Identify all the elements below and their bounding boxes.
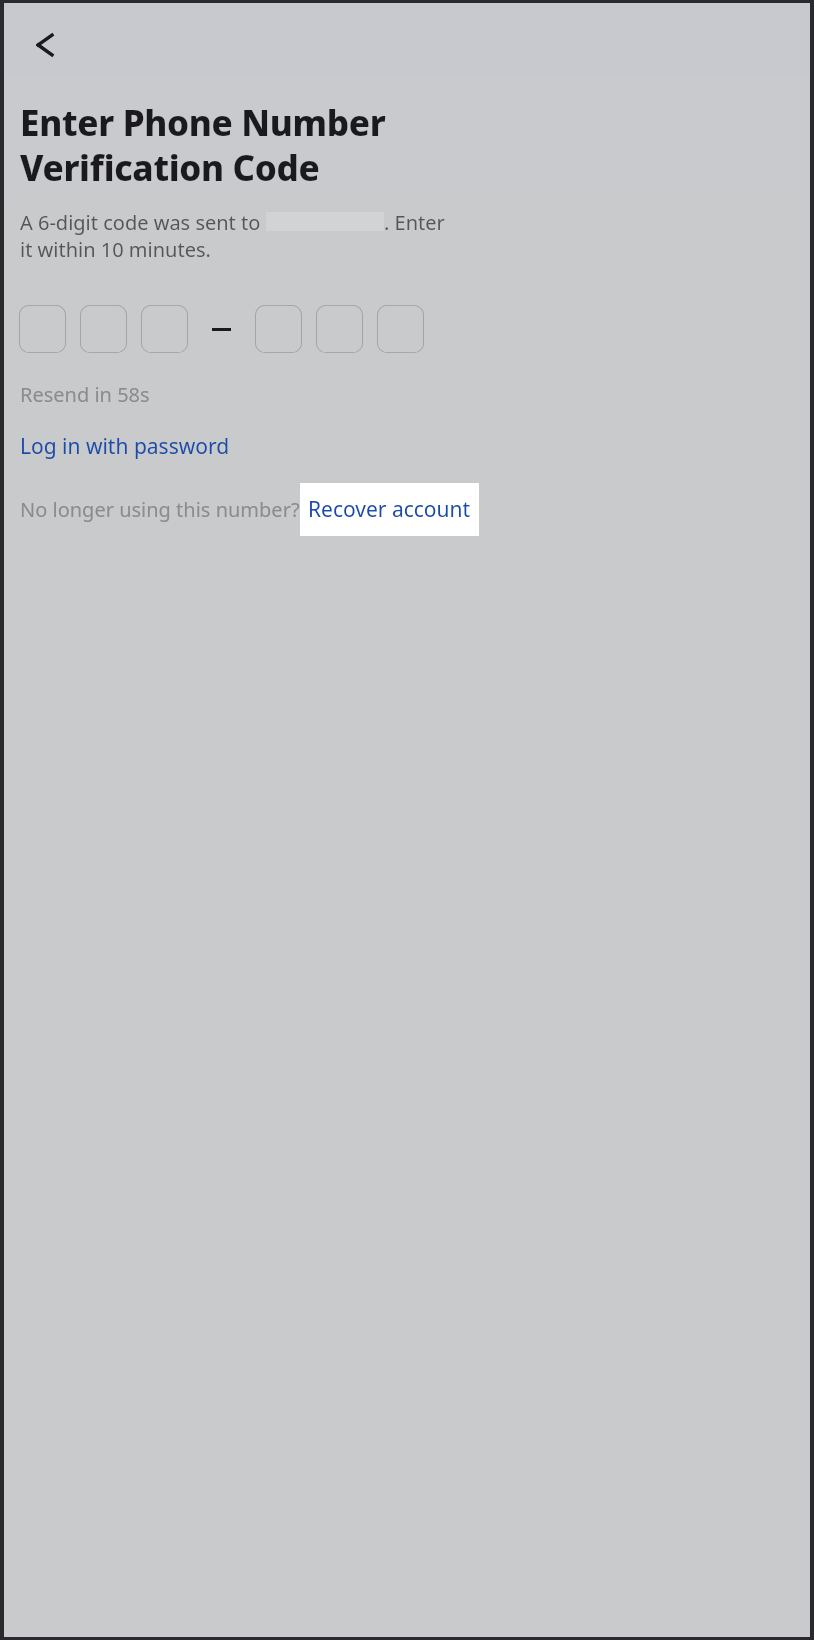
staticText: Resend in 58s: [20, 381, 150, 408]
button[interactable]: Code digit: [377, 305, 424, 353]
staticText: Log in with password: [20, 432, 230, 461]
button[interactable]: Log in with password: [20, 432, 230, 461]
button[interactable]: Recover account: [300, 483, 479, 536]
button[interactable]: Code digit: [255, 305, 302, 353]
button[interactable]: Resend in 58s: [20, 381, 150, 408]
staticText: it within 10 minutes.: [20, 236, 211, 263]
button[interactable]: Code digit: [141, 305, 188, 353]
staticText: . Enter: [384, 209, 445, 236]
button[interactable]: Code digit: [316, 305, 363, 353]
staticText: Enter Phone Number Verification Code: [20, 99, 386, 191]
button[interactable]: Back: [18, 17, 74, 73]
button[interactable]: Code digit: [19, 305, 66, 353]
staticText: No longer using this number?: [20, 496, 300, 523]
staticText: A 6-digit code was sent to: [20, 209, 266, 236]
staticText: Recover account: [308, 495, 471, 524]
button[interactable]: Code digit: [80, 305, 127, 353]
